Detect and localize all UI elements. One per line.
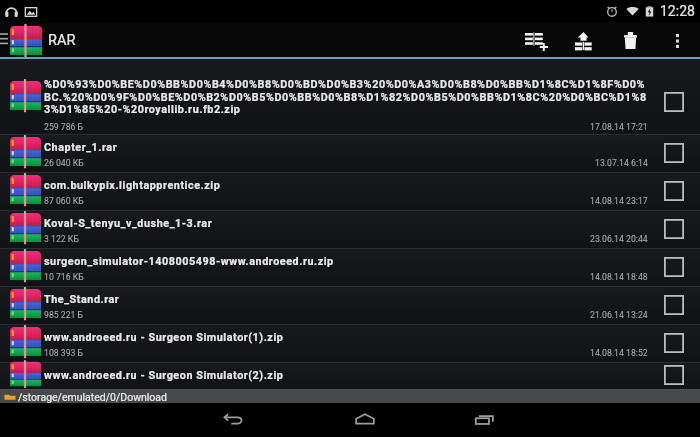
button[interactable]: Chapter_1.rar: [0, 135, 700, 172]
button[interactable]: Select: [656, 86, 692, 118]
button[interactable]: www.androeed.ru - Surgeon Simulator(1).z…: [0, 325, 700, 362]
staticText: 26 040 КБ: [44, 158, 84, 168]
staticText: 21.06.14 13:24: [590, 310, 648, 320]
staticText: surgeon_simulator-1408005498-www.androee…: [44, 255, 334, 268]
button[interactable]: Back: [198, 403, 268, 437]
button[interactable]: Navigation menu: [0, 22, 10, 57]
staticText: %D0%93%D0%BE%D0%BB%D0%B4%D0%B8%D0%BD%D0%…: [44, 78, 650, 115]
staticText: RAR: [48, 32, 76, 49]
button[interactable]: Extract: [560, 22, 607, 57]
staticText: Koval-S_tenyu_v_dushe_1-3.rar: [44, 217, 213, 230]
button[interactable]: Select: [656, 362, 692, 388]
button[interactable]: Select: [656, 251, 692, 283]
button[interactable]: surgeon_simulator-1408005498-www.androee…: [0, 249, 700, 286]
staticText: 87 060 КБ: [44, 196, 84, 206]
button[interactable]: com.bulkypix.lightapprentice.zip: [0, 173, 700, 210]
staticText: Chapter_1.rar: [44, 141, 118, 154]
staticText: 10 716 КБ: [44, 272, 84, 282]
button[interactable]: Select: [656, 327, 692, 359]
button[interactable]: Select: [656, 175, 692, 207]
button[interactable]: Select: [656, 289, 692, 321]
staticText: www.androeed.ru - Surgeon Simulator(2).z…: [44, 369, 284, 382]
staticText: The_Stand.rar: [44, 293, 120, 306]
staticText: 259 786 Б: [44, 122, 84, 132]
staticText: 12:28: [660, 3, 695, 19]
button[interactable]: The_Stand.rar: [0, 287, 700, 324]
staticText: 14.08.14 23:17: [590, 196, 648, 206]
button[interactable]: %D0%93%D0%BE%D0%BB%D0%B4%D0%B8%D0%BD%D0%…: [0, 59, 700, 134]
staticText: 14.08.14 18:52: [590, 348, 648, 358]
staticText: com.bulkypix.lightapprentice.zip: [44, 179, 221, 192]
staticText: 3 122 КБ: [44, 234, 79, 244]
button[interactable]: More options: [659, 22, 693, 57]
button[interactable]: Add to archive: [514, 22, 561, 57]
staticText: /storage/emulated/0/Download: [18, 391, 167, 403]
button[interactable]: Recent apps: [450, 403, 520, 437]
staticText: 13.07.14 6:14: [595, 158, 648, 168]
button[interactable]: Home: [330, 403, 400, 437]
staticText: www.androeed.ru - Surgeon Simulator(1).z…: [44, 331, 284, 344]
staticText: 17.08.14 17:21: [590, 122, 648, 132]
button[interactable]: Delete: [607, 22, 653, 57]
staticText: 14.08.14 18:48: [590, 272, 648, 282]
staticText: 985 221 Б: [44, 310, 84, 320]
staticText: 23.06.14 20:44: [590, 234, 648, 244]
button[interactable]: Select: [656, 213, 692, 245]
button[interactable]: Select: [656, 137, 692, 169]
staticText: 108 393 Б: [44, 348, 84, 358]
button[interactable]: Koval-S_tenyu_v_dushe_1-3.rar: [0, 211, 700, 248]
button[interactable]: www.androeed.ru - Surgeon Simulator(2).z…: [0, 363, 700, 389]
